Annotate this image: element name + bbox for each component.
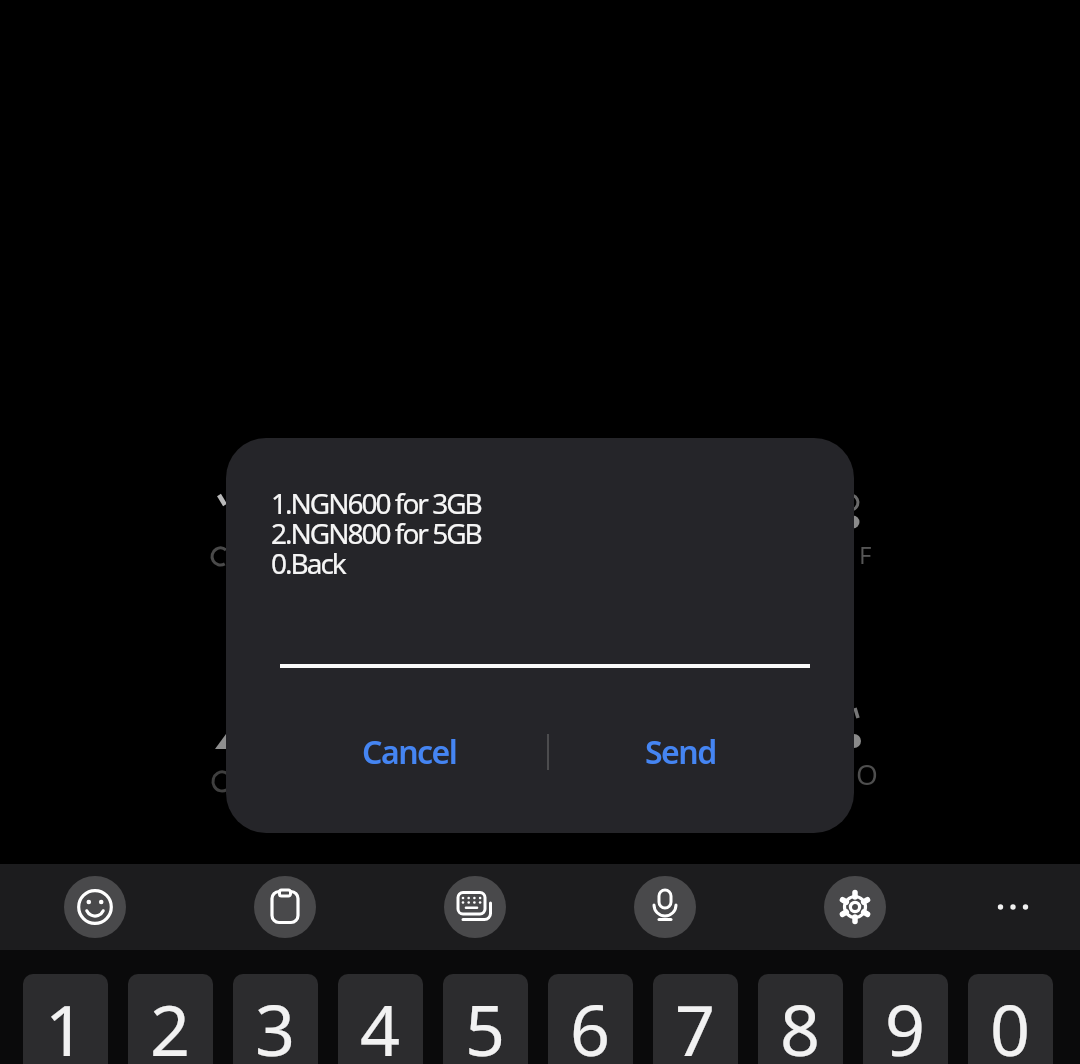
- staticText: O: [856, 755, 878, 793]
- button[interactable]: [824, 876, 886, 938]
- button[interactable]: 9: [863, 974, 948, 1064]
- staticText: 5: [465, 981, 506, 1064]
- button[interactable]: 1: [23, 974, 108, 1064]
- staticText: 1.NGN600 for 3GB 2.NGN800 for 5GB 0.Back: [271, 484, 481, 582]
- staticText: Cancel: [362, 730, 457, 774]
- staticText: 1: [45, 981, 86, 1064]
- button[interactable]: 6: [548, 974, 633, 1064]
- button[interactable]: 5: [443, 974, 528, 1064]
- staticText: F: [859, 538, 872, 571]
- staticText: 2: [150, 981, 191, 1064]
- button[interactable]: 7: [653, 974, 738, 1064]
- button[interactable]: Cancel: [321, 720, 497, 784]
- staticText: 8: [780, 981, 821, 1064]
- button[interactable]: [64, 876, 126, 938]
- button[interactable]: [444, 876, 506, 938]
- staticText: 7: [675, 981, 716, 1064]
- button[interactable]: 3: [233, 974, 318, 1064]
- staticText: 3: [255, 981, 296, 1064]
- button[interactable]: [634, 876, 696, 938]
- staticText: 4: [360, 981, 401, 1064]
- button[interactable]: 8: [758, 974, 843, 1064]
- staticText: 9: [885, 981, 926, 1064]
- button[interactable]: 0: [968, 974, 1053, 1064]
- staticText: Send: [645, 730, 716, 774]
- button[interactable]: [254, 876, 316, 938]
- button[interactable]: 2: [128, 974, 213, 1064]
- button[interactable]: [982, 876, 1044, 938]
- button[interactable]: 4: [338, 974, 423, 1064]
- staticText: 6: [570, 981, 611, 1064]
- staticText: 0: [990, 981, 1031, 1064]
- button[interactable]: Send: [592, 720, 768, 784]
